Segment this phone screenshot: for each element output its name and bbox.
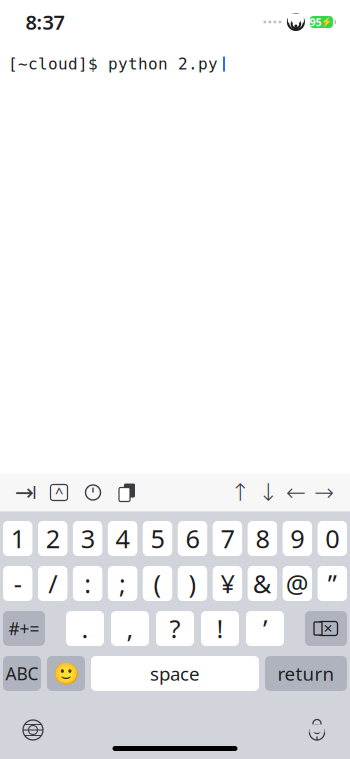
- button[interactable]: 0: [317, 521, 347, 556]
- button[interactable]: return: [265, 656, 347, 691]
- button[interactable]: 1: [3, 521, 32, 556]
- button[interactable]: @: [283, 566, 312, 601]
- button[interactable]: History: [76, 476, 110, 508]
- button[interactable]: Tab: [8, 476, 42, 508]
- staticText: ABC: [5, 662, 38, 685]
- button[interactable]: Right: [310, 476, 338, 508]
- staticText: 0: [325, 522, 339, 555]
- button[interactable]: ;: [108, 566, 137, 601]
- button[interactable]: Dictate: [300, 715, 334, 745]
- button[interactable]: Down: [254, 476, 282, 508]
- button[interactable]: !: [201, 611, 239, 646]
- button[interactable]: Next keyboard: [16, 715, 50, 745]
- staticText: ←: [286, 479, 306, 506]
- staticText: 8: [255, 522, 269, 555]
- staticText: :: [84, 567, 91, 600]
- staticText: 5: [150, 522, 164, 555]
- staticText: →: [15, 480, 34, 505]
- button[interactable]: 9: [283, 521, 312, 556]
- button[interactable]: Delete: [305, 611, 347, 646]
- staticText: →: [314, 479, 334, 506]
- staticText: ¥: [220, 567, 234, 600]
- staticText: .: [81, 612, 88, 645]
- button[interactable]: ,: [111, 611, 149, 646]
- button[interactable]: /: [38, 566, 67, 601]
- staticText: ⚡: [321, 17, 333, 27]
- staticText: #+=: [8, 617, 39, 640]
- staticText: (: [153, 567, 161, 600]
- button[interactable]: 3: [73, 521, 102, 556]
- button[interactable]: Emoji: [47, 656, 85, 691]
- button[interactable]: 5: [143, 521, 172, 556]
- staticText: 4: [116, 522, 130, 555]
- staticText: ?: [169, 612, 180, 645]
- staticText: 95: [309, 15, 321, 29]
- staticText: ,: [126, 612, 133, 645]
- staticText: return: [277, 661, 334, 686]
- staticText: @: [286, 567, 309, 600]
- staticText: space: [150, 661, 200, 686]
- button[interactable]: 4: [108, 521, 137, 556]
- button[interactable]: space: [91, 656, 259, 691]
- staticText: ’: [263, 612, 267, 645]
- staticText: ✕: [323, 622, 333, 635]
- staticText: 9: [290, 522, 304, 555]
- button[interactable]: (: [143, 566, 172, 601]
- button[interactable]: #+=: [3, 611, 45, 646]
- staticText: ^: [55, 483, 63, 502]
- staticText: ;: [119, 567, 126, 600]
- button[interactable]: ’: [246, 611, 284, 646]
- staticText: 6: [185, 522, 199, 555]
- staticText: [~cloud]$ python 2.py: [8, 55, 218, 73]
- staticText: 3: [81, 522, 95, 555]
- staticText: !: [216, 612, 223, 645]
- staticText: 8:37: [25, 9, 64, 35]
- button[interactable]: ”: [317, 566, 347, 601]
- button[interactable]: 6: [178, 521, 207, 556]
- button[interactable]: 2: [38, 521, 67, 556]
- button[interactable]: :: [73, 566, 102, 601]
- staticText: -: [14, 567, 22, 600]
- button[interactable]: Paste: [110, 476, 144, 508]
- button[interactable]: .: [66, 611, 104, 646]
- staticText: 7: [220, 522, 234, 555]
- staticText: 2: [46, 522, 60, 555]
- staticText: &: [253, 567, 272, 600]
- button[interactable]: 7: [213, 521, 242, 556]
- staticText: 1: [11, 522, 25, 555]
- staticText: /: [48, 567, 57, 600]
- button[interactable]: ¥: [213, 566, 242, 601]
- button[interactable]: ?: [156, 611, 194, 646]
- staticText: ↑: [230, 479, 250, 506]
- button[interactable]: -: [3, 566, 32, 601]
- button[interactable]: 8: [248, 521, 277, 556]
- button[interactable]: Up: [226, 476, 254, 508]
- button[interactable]: ): [178, 566, 207, 601]
- button[interactable]: Control: [42, 476, 76, 508]
- button[interactable]: Left: [282, 476, 310, 508]
- staticText: ”: [328, 567, 337, 600]
- button[interactable]: ABC: [3, 656, 41, 691]
- button[interactable]: &: [248, 566, 277, 601]
- staticText: ): [188, 567, 196, 600]
- staticText: 🙂: [52, 661, 79, 686]
- staticText: ↓: [258, 479, 278, 506]
